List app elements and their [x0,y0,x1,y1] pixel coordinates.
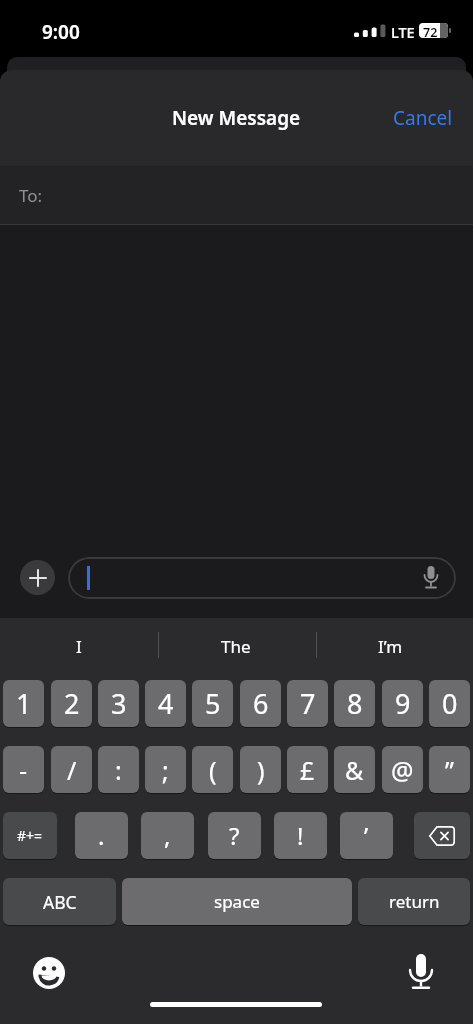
staticText: @ [391,753,414,787]
staticText: #+= [17,826,43,845]
staticText: ’ [364,819,369,852]
button[interactable]: 7 [287,680,328,727]
staticText: . [98,819,105,852]
button[interactable]: Cancel [393,105,453,131]
staticText: £ [300,753,315,787]
staticText: ” [445,753,454,787]
button[interactable]: £ [287,746,328,793]
button[interactable]: space [122,878,352,925]
staticText: 5 [205,685,221,722]
staticText: ; [162,753,169,787]
button[interactable]: 9 [382,680,423,727]
staticText: / [67,753,77,787]
staticText: I [76,635,82,658]
button[interactable]: : [98,746,139,793]
button[interactable]: I [19,630,139,662]
button[interactable]: 1 [3,680,44,727]
button[interactable]: To: [0,166,473,224]
staticText: : [115,753,122,787]
staticText: & [345,753,364,787]
button[interactable]: ’ [340,812,393,859]
staticText: - [19,753,28,787]
staticText: ) [257,753,265,787]
button[interactable]: @ [382,746,423,793]
staticText: 3 [111,685,127,722]
button[interactable]: - [3,746,44,793]
staticText: 72 [423,24,438,38]
button[interactable]: ; [145,746,186,793]
staticText: ? [229,819,240,852]
button[interactable]: 3 [98,680,139,727]
button[interactable]: , [141,812,194,859]
staticText: ! [297,819,304,852]
button[interactable]: ” [429,746,470,793]
staticText: New Message [172,105,301,131]
button[interactable]: return [358,878,470,925]
button[interactable]: 2 [51,680,92,727]
staticText: ( [209,753,217,787]
button[interactable]: ABC [3,878,116,925]
staticText: 8 [347,685,363,722]
staticText: I’m [378,635,403,658]
button[interactable]: The [176,630,296,662]
button[interactable]: / [51,746,92,793]
staticText: space [214,890,260,913]
staticText: 1 [16,685,32,722]
staticText: return [389,890,440,913]
button[interactable]: . [75,812,128,859]
staticText: 6 [253,685,269,722]
button[interactable]: 5 [192,680,233,727]
staticText: The [221,635,251,658]
staticText: 2 [64,685,80,722]
staticText: , [164,819,171,852]
button[interactable]: #+= [3,812,57,859]
staticText: ABC [43,890,77,914]
button[interactable]: 6 [240,680,281,727]
button[interactable]: ) [240,746,281,793]
button[interactable]: ? [208,812,261,859]
staticText: 0 [442,685,458,722]
staticText: 7 [300,685,316,722]
button[interactable]: 4 [145,680,186,727]
button[interactable] [401,952,441,992]
button[interactable]: ( [192,746,233,793]
button[interactable]: 0 [429,680,470,727]
button[interactable] [414,812,470,859]
staticText: 9 [395,685,411,722]
button[interactable]: ! [274,812,327,859]
button[interactable]: I’m [330,630,450,662]
staticText: LTE [391,22,415,42]
staticText: 9:00 [42,19,80,45]
button[interactable]: & [334,746,375,793]
staticText: 4 [158,685,174,722]
button[interactable] [20,560,55,595]
button[interactable] [29,953,69,993]
button[interactable]: 8 [334,680,375,727]
button[interactable] [68,557,456,599]
staticText: Cancel [393,105,453,131]
staticText: To: [19,184,43,207]
